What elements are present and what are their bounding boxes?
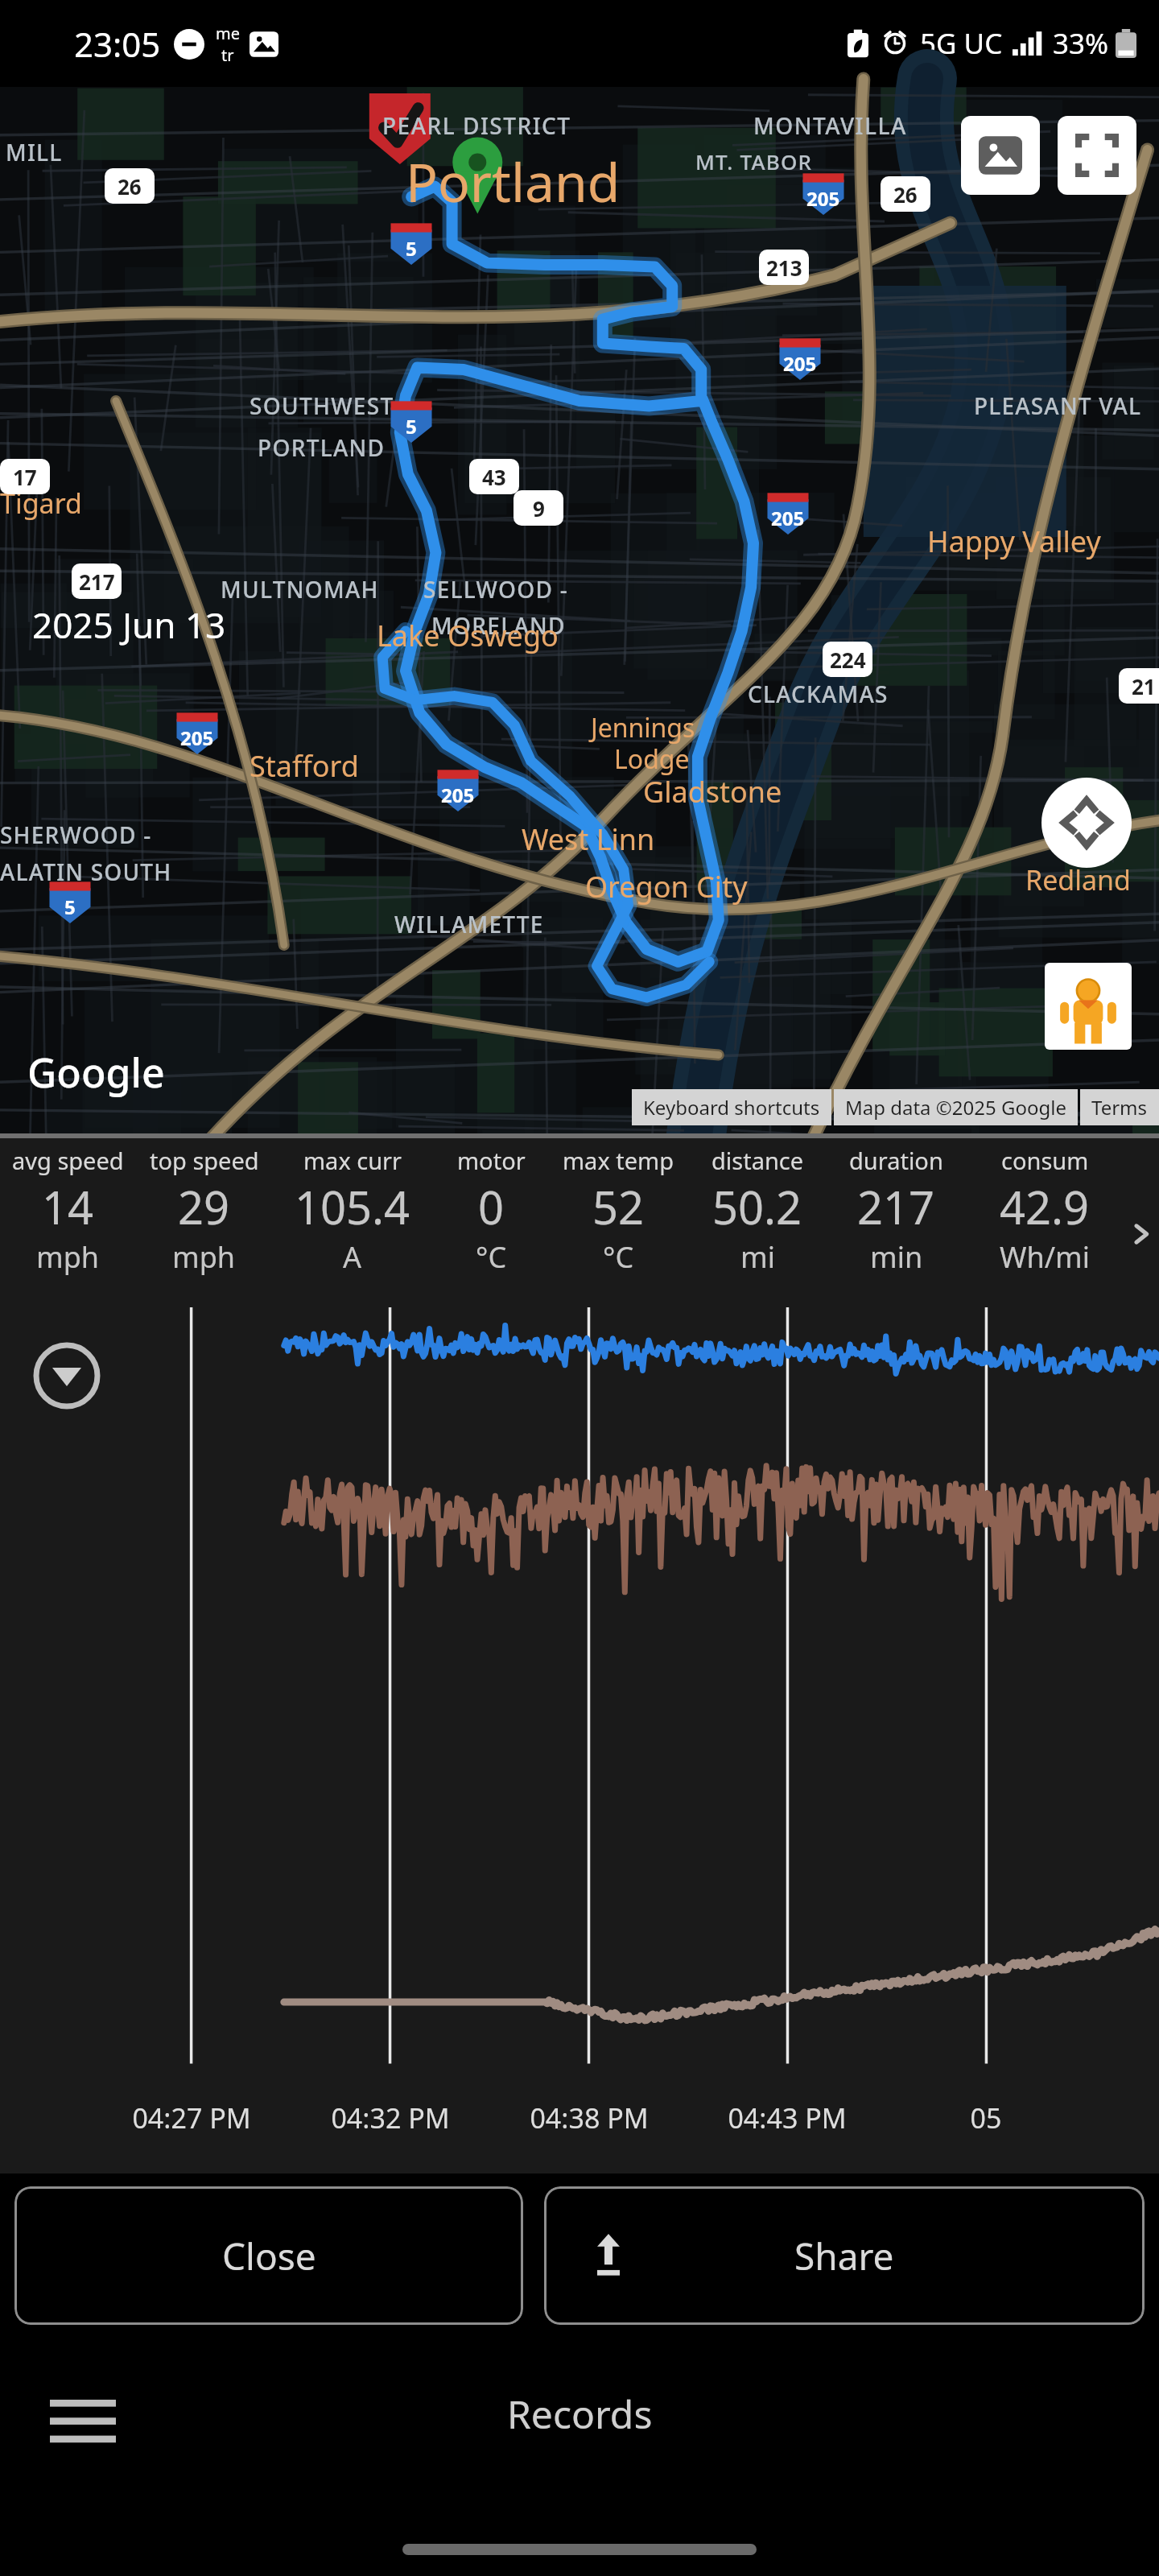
staticText: 2025 Jun 13 — [32, 601, 226, 649]
staticText: 43 — [482, 463, 506, 491]
staticText: 23:05 — [74, 21, 161, 67]
staticText: 205 — [806, 185, 840, 212]
staticText: 105.4 — [295, 1176, 410, 1237]
staticText: 5 — [406, 413, 417, 440]
staticText: PLEASANT VAL — [974, 390, 1142, 421]
button[interactable]: max temp — [549, 1138, 688, 1294]
staticText: 205 — [180, 724, 214, 751]
button[interactable]: consum — [966, 1138, 1124, 1294]
staticText: 29 — [178, 1176, 230, 1237]
staticText: tr — [221, 44, 234, 66]
button[interactable]: avg speed — [0, 1138, 136, 1294]
staticText: A — [343, 1237, 362, 1277]
staticText: Lodge — [614, 741, 690, 777]
staticText: min — [870, 1237, 923, 1277]
staticText: Tigard — [0, 485, 82, 522]
staticText: 04:27 PM — [115, 2099, 268, 2136]
staticText: MULTNOMAH — [221, 574, 379, 605]
staticText: Oregon City — [585, 867, 748, 906]
staticText: 04:38 PM — [513, 2099, 666, 2136]
staticText: Wh/mi — [1000, 1237, 1091, 1277]
staticText: WILLAMETTE — [394, 909, 544, 939]
staticText: duration — [849, 1145, 943, 1176]
staticText: SOUTHWEST — [250, 390, 394, 421]
staticText: 213 — [766, 254, 802, 282]
staticText: Portland — [406, 145, 621, 217]
staticText: Terms — [1091, 1094, 1148, 1121]
staticText: °C — [603, 1237, 634, 1277]
button[interactable]: Close — [14, 2186, 523, 2325]
button[interactable]: max curr — [272, 1138, 433, 1294]
staticText: CLACKAMAS — [748, 679, 889, 709]
button[interactable]: Pan map — [1041, 778, 1132, 868]
staticText: 5G UC — [920, 24, 1003, 63]
staticText: 5 — [64, 894, 76, 920]
staticText: Jennings — [591, 710, 695, 745]
staticText: MILL — [6, 137, 63, 167]
staticText: mph — [36, 1237, 100, 1277]
staticText: 205 — [771, 505, 805, 531]
button[interactable]: top speed — [136, 1138, 272, 1294]
staticText: Map data ©2025 Google — [845, 1094, 1066, 1121]
staticText: Share — [794, 2231, 894, 2281]
button[interactable]: Collapse chart — [32, 1341, 101, 1410]
staticText: MT. TABOR — [695, 147, 813, 175]
staticText: motor — [457, 1145, 526, 1176]
button[interactable]: duration — [827, 1138, 966, 1294]
staticText: 50.2 — [712, 1176, 802, 1237]
staticText: 04:43 PM — [711, 2099, 864, 2136]
staticText: 217 — [857, 1176, 935, 1237]
staticText: Google — [27, 1045, 165, 1100]
button[interactable]: More stats — [1124, 1138, 1159, 1294]
staticText: 05 — [909, 2099, 1062, 2136]
button[interactable]: motor — [433, 1138, 549, 1294]
staticText: 26 — [118, 172, 142, 200]
staticText: SHERWOOD - — [0, 819, 152, 850]
staticText: consum — [1001, 1145, 1089, 1176]
staticText: 205 — [783, 350, 817, 377]
staticText: Gladstone — [643, 772, 782, 811]
staticText: PORTLAND — [258, 432, 386, 463]
staticText: MONTAVILLA — [753, 110, 907, 141]
staticText: 17 — [13, 463, 37, 491]
staticText: 205 — [441, 782, 475, 808]
staticText: Lake Oswego — [377, 616, 559, 655]
staticText: 52 — [592, 1176, 645, 1237]
staticText: Stafford — [250, 746, 359, 786]
staticText: PEARL DISTRICT — [382, 110, 571, 141]
staticText: avg speed — [12, 1145, 124, 1176]
button[interactable]: Street View — [1045, 963, 1132, 1050]
staticText: 26 — [893, 180, 918, 208]
button[interactable]: Share — [544, 2186, 1145, 2325]
staticText: mi — [740, 1237, 775, 1277]
staticText: Happy Valley — [927, 522, 1101, 561]
button[interactable]: Fullscreen — [1058, 116, 1136, 195]
staticText: max curr — [303, 1145, 402, 1176]
staticText: max temp — [563, 1145, 674, 1176]
staticText: mph — [172, 1237, 236, 1277]
button[interactable]: Menu — [50, 2396, 116, 2446]
staticText: ALATIN SOUTH — [0, 857, 172, 887]
staticText: 14 — [42, 1176, 94, 1237]
staticText: 21 — [1132, 672, 1156, 700]
button[interactable]: Map type — [961, 116, 1040, 195]
staticText: 5 — [406, 235, 417, 262]
staticText: Redland — [1025, 861, 1132, 898]
staticText: 04:32 PM — [314, 2099, 467, 2136]
button[interactable]: distance — [688, 1138, 827, 1294]
staticText: 42.9 — [1000, 1176, 1090, 1237]
staticText: Close — [222, 2231, 316, 2281]
staticText: Keyboard shortcuts — [643, 1094, 820, 1121]
staticText: 33% — [1053, 24, 1109, 63]
staticText: 9 — [533, 494, 545, 522]
staticText: MORELAND — [431, 610, 566, 641]
staticText: 0 — [478, 1176, 505, 1237]
staticText: me — [216, 23, 240, 44]
staticText: °C — [476, 1237, 507, 1277]
staticText: top speed — [150, 1145, 259, 1176]
staticText: SELLWOOD - — [423, 574, 569, 605]
staticText: West Linn — [522, 819, 655, 859]
staticText: Records — [507, 2388, 653, 2440]
staticText: 224 — [830, 646, 866, 674]
staticText: 217 — [79, 568, 115, 596]
